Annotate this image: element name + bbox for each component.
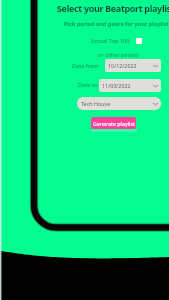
button[interactable]: Generate playlist: [91, 117, 136, 129]
staticText: 11/03/2022: [102, 82, 131, 89]
staticText: or other period: [98, 51, 139, 59]
other: Open Tech House selector: [153, 103, 158, 105]
staticText: Date to:: [78, 81, 99, 89]
staticText: Pick period and genre for your playlist: [64, 20, 169, 27]
button[interactable]: Actual Top 100: [91, 37, 136, 45]
staticText: Actual Top 100: [91, 37, 130, 45]
other: Open 10/12/2022 selector: [153, 65, 158, 67]
button[interactable]: 11/03/2022: [99, 79, 161, 92]
other: Open 11/03/2022 selector: [153, 85, 158, 87]
staticText: 10/12/2022: [108, 62, 137, 69]
staticText: Select your Beatport playlist: [57, 2, 169, 14]
button[interactable]: Tech House: [77, 97, 161, 110]
staticText: Tech House: [81, 100, 111, 107]
staticText: Date from:: [72, 62, 101, 70]
button[interactable]: 10/12/2022: [105, 59, 161, 72]
staticText: Generate playlist: [93, 120, 135, 127]
